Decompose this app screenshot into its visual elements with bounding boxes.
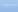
staticText: Sunny (5, 7, 10, 9)
staticText: Cupertino (2, 3, 17, 7)
button[interactable]: Cupertino (2, 3, 17, 9)
